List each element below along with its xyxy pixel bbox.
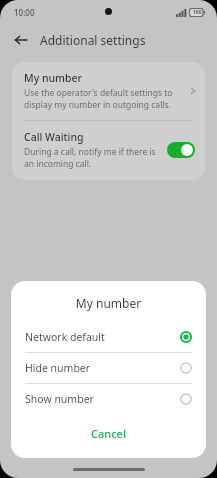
staticText: Additional settings: [40, 32, 146, 48]
staticText: Use the operator's default settings to d…: [24, 87, 185, 111]
button[interactable]: My number: [12, 62, 205, 120]
button[interactable]: Call Waiting: [12, 121, 205, 180]
staticText: Network default: [25, 330, 180, 344]
staticText: My number: [24, 71, 83, 85]
staticText: 100: [193, 9, 202, 16]
staticText: During a call, notify me if there is an …: [24, 146, 161, 170]
button[interactable]: Network default: [11, 322, 206, 352]
staticText: 10:00: [14, 7, 35, 18]
staticText: Cancel: [91, 426, 126, 441]
button[interactable]: Cancel: [11, 419, 206, 448]
button[interactable]: Call waiting toggle: [167, 142, 195, 158]
button[interactable]: Hide number: [11, 353, 206, 383]
button[interactable]: Back: [8, 27, 34, 53]
staticText: Call Waiting: [24, 130, 84, 144]
staticText: Show number: [25, 392, 180, 406]
staticText: My number: [11, 295, 206, 311]
button[interactable]: Show number: [11, 384, 206, 414]
staticText: Hide number: [25, 361, 180, 375]
